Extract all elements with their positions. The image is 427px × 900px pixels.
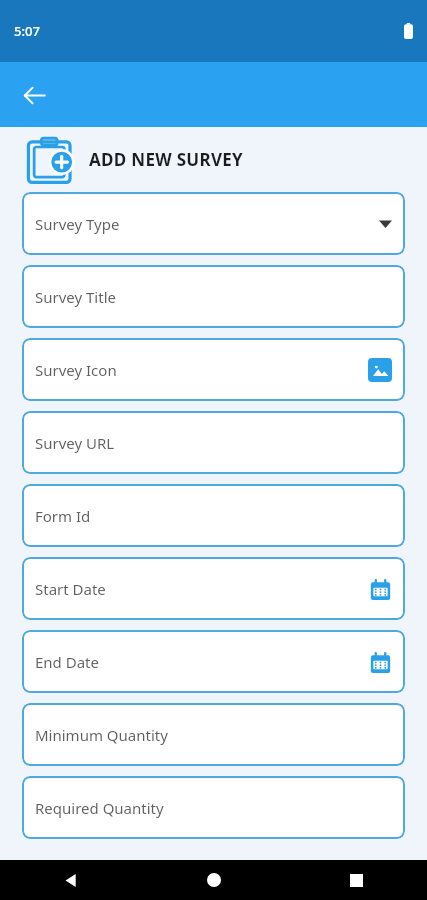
staticText: Form Id	[35, 506, 392, 526]
staticText: ADD NEW SURVEY	[89, 148, 244, 171]
button[interactable]: Form Id	[22, 484, 405, 547]
button[interactable]: Recent apps	[285, 860, 427, 900]
button[interactable]: Start Date	[22, 557, 405, 620]
staticText: Survey Title	[35, 287, 392, 307]
button[interactable]: End Date	[22, 630, 405, 693]
staticText: Start Date	[35, 579, 368, 599]
button[interactable]: Pick survey icon	[368, 358, 392, 382]
button[interactable]: Pick date	[368, 650, 392, 674]
button[interactable]: Required Quantity	[22, 776, 405, 839]
button[interactable]: Home	[143, 860, 285, 900]
button[interactable]: Survey Icon	[22, 338, 405, 401]
staticText: Survey Icon	[35, 360, 368, 380]
button[interactable]: Back	[0, 860, 143, 900]
button[interactable]: Minimum Quantity	[22, 703, 405, 766]
button[interactable]: Survey Type	[22, 192, 405, 255]
button[interactable]: Back	[12, 73, 56, 117]
staticText: Survey URL	[35, 433, 392, 453]
button[interactable]: Survey Title	[22, 265, 405, 328]
button[interactable]: Pick date	[368, 577, 392, 601]
button[interactable]: Survey URL	[22, 411, 405, 474]
staticText: 5:07	[14, 22, 40, 40]
staticText: Minimum Quantity	[35, 725, 392, 745]
staticText: Required Quantity	[35, 798, 392, 818]
staticText: Survey Type	[35, 214, 379, 234]
staticText: End Date	[35, 652, 368, 672]
